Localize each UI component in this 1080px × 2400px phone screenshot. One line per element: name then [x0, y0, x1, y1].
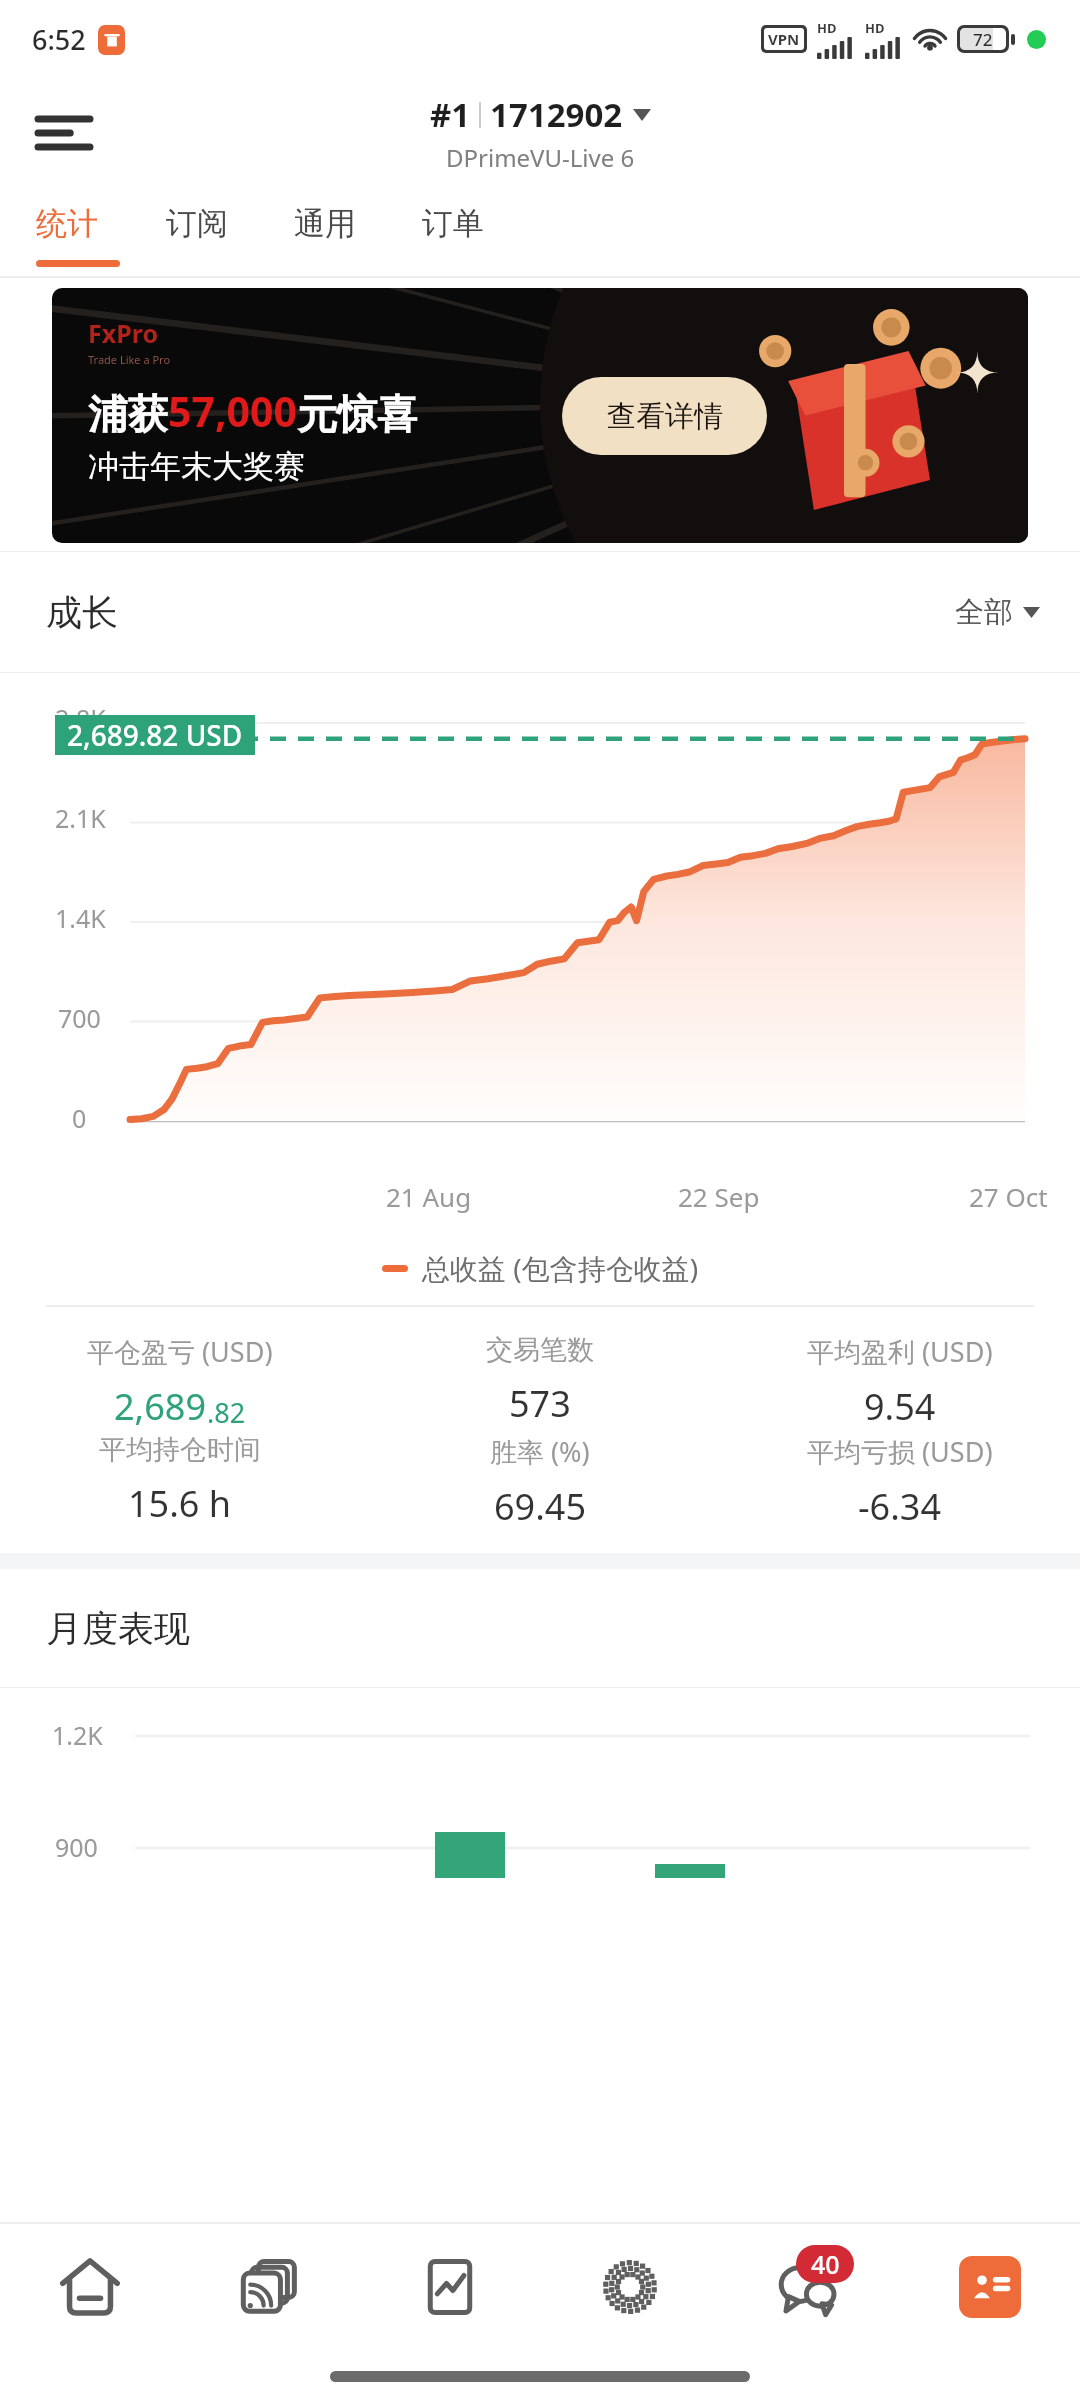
staticText: HD: [817, 19, 837, 37]
staticText: 27 Oct: [969, 1179, 1048, 1214]
button[interactable]: 订阅: [166, 188, 294, 278]
staticText: 月度表现: [46, 1606, 190, 1651]
staticText: 2,689: [114, 1382, 207, 1431]
staticText: 9.54: [864, 1382, 936, 1431]
staticText: 22 Sep: [678, 1179, 760, 1214]
staticText: 15.6 h: [128, 1479, 232, 1528]
button[interactable]: Home: [0, 2222, 180, 2352]
button[interactable]: 订单: [422, 188, 550, 278]
staticText: 平仓盈亏 (USD): [87, 1333, 273, 1370]
staticText: 统计: [36, 204, 98, 243]
staticText: 元惊喜: [297, 389, 417, 439]
button[interactable]: #1: [430, 92, 651, 174]
staticText: -6.34: [858, 1482, 942, 1531]
staticText: 1.2K: [52, 1718, 103, 1752]
button[interactable]: 查看详情: [562, 377, 767, 455]
staticText: 通用: [294, 204, 356, 243]
button[interactable]: Menu: [24, 93, 104, 173]
staticText: 总收益 (包含持仓收益): [422, 1249, 699, 1287]
staticText: 全部: [955, 594, 1013, 631]
staticText: VPN: [768, 29, 800, 49]
staticText: 浦获: [88, 389, 168, 439]
staticText: .82: [207, 1394, 246, 1431]
staticText: 2,689.82 USD: [67, 716, 243, 754]
staticText: 订阅: [166, 204, 228, 243]
button[interactable]: Profile: [900, 2222, 1080, 2352]
staticText: 2.8K: [55, 701, 106, 735]
staticText: #1: [430, 92, 471, 137]
button[interactable]: 全部: [955, 594, 1040, 631]
staticText: HD: [865, 19, 885, 37]
button[interactable]: Discover: [540, 2222, 720, 2352]
staticText: 0: [72, 1101, 87, 1135]
button[interactable]: 统计: [36, 188, 166, 278]
staticText: 573: [509, 1379, 571, 1428]
staticText: FxPro: [88, 316, 159, 350]
staticText: 冲击年末大奖赛: [88, 447, 305, 486]
button[interactable]: FxPro: [52, 288, 1028, 543]
staticText: 72: [973, 28, 993, 50]
staticText: 900: [55, 1830, 98, 1864]
staticText: 订单: [422, 204, 484, 243]
staticText: 1712902: [490, 92, 623, 137]
staticText: 平均盈利 (USD): [807, 1333, 993, 1370]
staticText: 查看详情: [607, 398, 723, 435]
staticText: DPrimeVU-Live 6: [446, 141, 635, 174]
staticText: 6:52: [32, 21, 86, 58]
staticText: 胜率 (%): [490, 1433, 590, 1470]
staticText: 1.4K: [55, 901, 106, 935]
staticText: 21 Aug: [386, 1179, 472, 1214]
button[interactable]: Copy trading: [180, 2222, 360, 2352]
staticText: 平均亏损 (USD): [807, 1433, 993, 1470]
staticText: 700: [58, 1001, 101, 1035]
staticText: 平均持仓时间: [99, 1433, 261, 1467]
staticText: 2.1K: [55, 801, 106, 835]
staticText: 69.45: [494, 1482, 587, 1531]
staticText: 57,000: [168, 383, 297, 439]
button[interactable]: Charts: [360, 2222, 540, 2352]
button[interactable]: Messages: [720, 2222, 900, 2352]
staticText: Trade Like a Pro: [88, 352, 171, 367]
button[interactable]: 通用: [294, 188, 422, 278]
staticText: 40: [811, 2247, 840, 2281]
staticText: 成长: [46, 590, 118, 635]
staticText: 交易笔数: [486, 1333, 594, 1367]
